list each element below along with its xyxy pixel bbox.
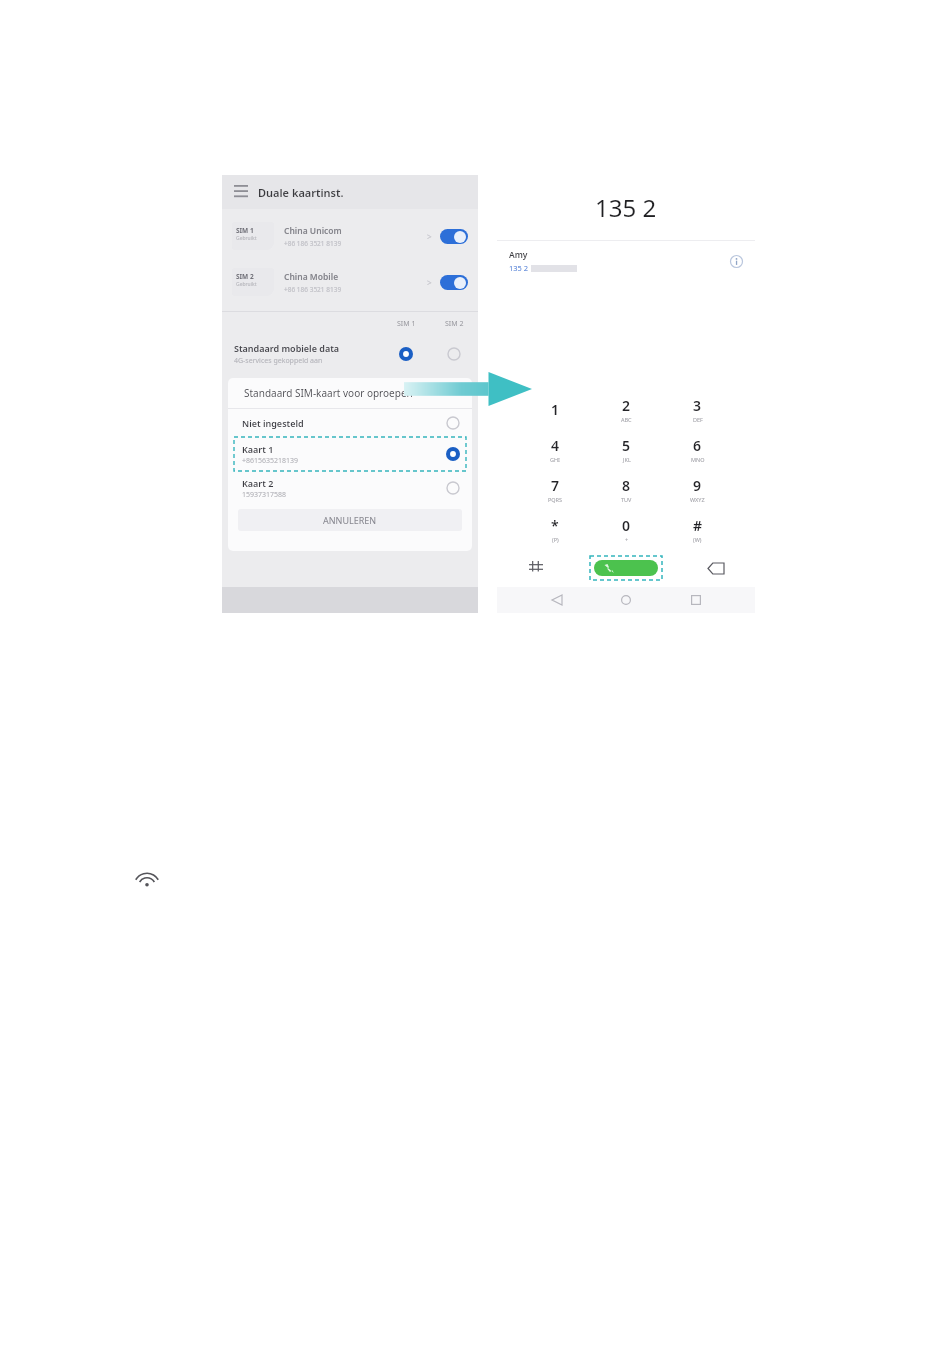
staticText: Amy — [509, 249, 528, 261]
staticText: 0 — [622, 516, 631, 535]
staticText: Standaard SIM-kaart voor oproepen — [244, 386, 413, 400]
button[interactable]: 3 — [662, 389, 733, 429]
staticText: + — [625, 536, 629, 543]
staticText: WXYZ — [690, 496, 705, 503]
staticText: 15937317588 — [242, 490, 287, 500]
button[interactable]: 1 — [519, 389, 591, 429]
button[interactable]: ANNULEREN — [238, 509, 462, 531]
staticText: > — [427, 231, 432, 242]
staticText: 4G-services gekoppeld aan — [234, 356, 323, 366]
button[interactable]: Kaart 2 — [228, 471, 472, 505]
staticText: 8 — [622, 476, 631, 495]
staticText: JKL — [623, 456, 631, 463]
staticText: Niet ingesteld — [242, 417, 304, 429]
staticText: Standaard mobiele data — [234, 342, 340, 354]
button[interactable]: Standaard mobiele data — [222, 336, 478, 372]
staticText: Kaart 2 — [242, 477, 274, 489]
button[interactable]: 7 — [519, 469, 591, 509]
button[interactable]: Home — [616, 590, 636, 610]
staticText: (P) — [552, 536, 559, 543]
staticText: Kaart 1 — [242, 443, 274, 455]
button[interactable]: 4 — [519, 429, 591, 469]
button[interactable]: SIM 2 — [222, 261, 478, 303]
staticText: MNO — [691, 456, 705, 463]
staticText: Duale kaartinst. — [258, 185, 344, 200]
staticText: SIM 1 — [397, 319, 416, 329]
other: Menu — [234, 185, 248, 199]
staticText: +86 186 3521 8139 — [284, 239, 342, 248]
staticText: SIM 2 — [445, 319, 464, 329]
button[interactable]: Keypad — [529, 561, 543, 575]
staticText: PQRS — [548, 496, 563, 503]
staticText: 135 2 — [509, 263, 529, 273]
staticText: Gebruikt — [236, 281, 257, 288]
button[interactable]: Backspace — [708, 563, 724, 574]
staticText: 7 — [551, 476, 560, 495]
button[interactable]: Back — [547, 590, 567, 610]
staticText: (W) — [693, 536, 702, 543]
button[interactable]: Contact info — [730, 255, 743, 268]
staticText: ABC — [621, 416, 632, 423]
button[interactable]: Toggle SIM 2 — [440, 275, 468, 290]
button[interactable]: Niet ingesteld — [228, 409, 472, 437]
staticText: 1 — [551, 400, 560, 419]
button[interactable]: Toggle SIM 1 — [440, 229, 468, 244]
staticText: 3 — [693, 396, 702, 415]
staticText: 9 — [693, 476, 702, 495]
button[interactable]: 8 — [591, 469, 662, 509]
button[interactable]: 9 — [662, 469, 733, 509]
staticText: China Mobile — [284, 271, 339, 283]
staticText: 5 — [622, 436, 631, 455]
button[interactable]: 5 — [591, 429, 662, 469]
button[interactable]: 0 — [591, 509, 662, 549]
staticText: SIM 2 — [236, 272, 254, 281]
staticText: 4 — [551, 436, 560, 455]
staticText: ANNULEREN — [323, 514, 377, 526]
staticText: TUV — [621, 496, 632, 503]
staticText: # — [693, 516, 703, 535]
staticText: 6 — [693, 436, 702, 455]
staticText: +8615635218139 — [242, 456, 299, 466]
staticText: +86 186 3521 8139 — [284, 285, 342, 294]
staticText: China Unicom — [284, 225, 342, 237]
button[interactable]: Call — [594, 560, 658, 576]
staticText: SIM 1 — [236, 226, 254, 235]
staticText: > — [427, 277, 432, 288]
button[interactable]: SIM 1 — [222, 215, 478, 257]
button[interactable]: Recents — [686, 590, 706, 610]
staticText: 2 — [622, 396, 631, 415]
staticText: DEF — [693, 416, 703, 423]
button[interactable]: Amy — [497, 241, 755, 281]
button[interactable]: # — [662, 509, 733, 549]
button[interactable]: 6 — [662, 429, 733, 469]
staticText: Gebruikt — [236, 235, 257, 242]
button[interactable]: 2 — [591, 389, 662, 429]
staticText: 135 2 — [595, 191, 657, 224]
staticText: GHI — [550, 456, 560, 463]
button[interactable]: * — [519, 509, 591, 549]
button[interactable]: Kaart 1 — [228, 437, 472, 471]
staticText: * — [551, 516, 559, 535]
